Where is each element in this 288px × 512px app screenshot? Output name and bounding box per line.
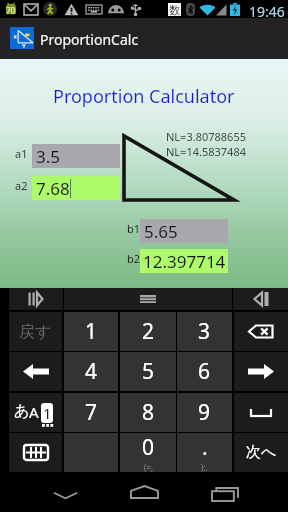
staticText: NL=3.80788655 bbox=[166, 129, 246, 144]
staticText: 12.397714 bbox=[143, 250, 226, 273]
staticText: (=, bbox=[144, 462, 154, 472]
button[interactable]: Space bbox=[234, 393, 288, 432]
button[interactable]: Next candidate bbox=[9, 288, 63, 310]
button[interactable]: . bbox=[177, 433, 232, 472]
staticText: Proportion Calculator bbox=[53, 84, 235, 109]
button[interactable]: Previous candidate bbox=[233, 288, 288, 310]
button[interactable]: Delete bbox=[234, 312, 288, 351]
staticText: ):. bbox=[201, 462, 208, 472]
staticText: A bbox=[29, 402, 39, 422]
button[interactable]: Change input mode bbox=[9, 393, 62, 432]
button[interactable]: 3 bbox=[177, 312, 232, 351]
staticText: a2 bbox=[15, 178, 28, 193]
staticText: 1 bbox=[85, 317, 98, 346]
button[interactable]: Keyboard layout bbox=[9, 433, 62, 472]
staticText: b1 bbox=[127, 221, 141, 236]
staticText: 4 bbox=[85, 357, 98, 386]
staticText: ProportionCalc bbox=[40, 30, 139, 49]
staticText: 5.65 bbox=[144, 220, 178, 243]
staticText: b2 bbox=[127, 251, 141, 266]
button[interactable]: 8 bbox=[120, 393, 176, 432]
staticText: . bbox=[202, 433, 208, 462]
staticText: 6 bbox=[198, 357, 211, 386]
staticText: 70 bbox=[6, 5, 16, 16]
button[interactable]: Home bbox=[108, 473, 180, 512]
button[interactable]: 0 bbox=[120, 433, 176, 472]
staticText: 8 bbox=[142, 398, 155, 427]
staticText: あ bbox=[14, 402, 30, 421]
button[interactable]: 次へ bbox=[234, 433, 288, 472]
button[interactable]: 4 bbox=[64, 352, 118, 391]
staticText: 戻す bbox=[19, 322, 52, 342]
button[interactable]: Back bbox=[29, 473, 101, 512]
button[interactable]: 5 bbox=[120, 352, 176, 391]
staticText: 7.68 bbox=[36, 177, 70, 200]
button[interactable]: Move keyboard bbox=[64, 288, 232, 310]
staticText: 3.5 bbox=[36, 145, 61, 168]
staticText: 数 bbox=[169, 3, 180, 16]
staticText: 1 bbox=[43, 403, 52, 423]
staticText: 2 bbox=[142, 317, 155, 346]
button[interactable]: 6 bbox=[177, 352, 232, 391]
button[interactable]: Recent apps bbox=[189, 473, 261, 512]
staticText: 9 bbox=[198, 398, 211, 427]
staticText: NL=14.5837484 bbox=[166, 144, 246, 159]
button[interactable]: 2 bbox=[120, 312, 176, 351]
button[interactable]: 1 bbox=[64, 312, 118, 351]
button[interactable]: 戻す bbox=[9, 312, 62, 351]
staticText: 3 bbox=[198, 317, 211, 346]
staticText: 次へ bbox=[246, 443, 277, 462]
button[interactable]: Cursor right bbox=[234, 352, 288, 391]
staticText: a1 bbox=[15, 146, 28, 161]
staticText: 7 bbox=[85, 398, 98, 427]
staticText: 0 bbox=[142, 433, 155, 462]
staticText: 19:46 bbox=[249, 2, 285, 20]
button[interactable]: 9 bbox=[177, 393, 232, 432]
staticText: 5 bbox=[142, 357, 155, 386]
button[interactable]: 7 bbox=[64, 393, 118, 432]
button[interactable]: Cursor left bbox=[9, 352, 62, 391]
